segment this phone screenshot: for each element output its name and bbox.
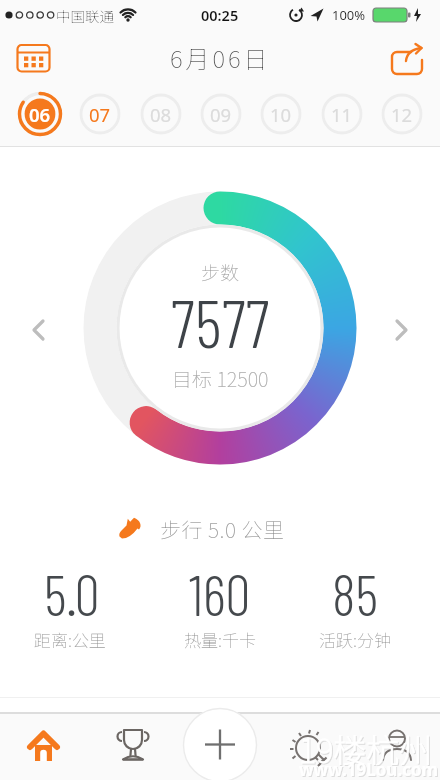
staticText: 07 bbox=[89, 102, 111, 127]
button[interactable]: 6月06日 bbox=[140, 40, 300, 72]
button[interactable]: 10 bbox=[258, 91, 304, 137]
button[interactable]: 07 bbox=[77, 91, 123, 137]
staticText: 距离:公里 bbox=[34, 627, 106, 651]
staticText: 160 bbox=[189, 560, 251, 627]
button[interactable] bbox=[290, 730, 330, 770]
staticText: 19楼杭州 bbox=[300, 726, 434, 766]
button[interactable] bbox=[28, 317, 50, 343]
staticText: www.19Lou.com bbox=[300, 759, 440, 780]
button[interactable] bbox=[389, 43, 427, 77]
button[interactable]: 85 bbox=[295, 558, 415, 628]
button[interactable] bbox=[379, 729, 415, 765]
staticText: 08 bbox=[150, 102, 172, 127]
staticText: www.19Lou.com bbox=[299, 758, 439, 780]
button[interactable]: 5.0 bbox=[12, 558, 132, 628]
button[interactable]: 08 bbox=[138, 91, 184, 137]
button[interactable]: 11 bbox=[319, 91, 365, 137]
button[interactable] bbox=[390, 317, 412, 343]
staticText: 10 bbox=[270, 102, 292, 127]
button[interactable] bbox=[16, 43, 51, 73]
staticText: 12 bbox=[391, 102, 413, 127]
button[interactable]: 06 bbox=[17, 91, 63, 137]
staticText: 热量:千卡 bbox=[184, 627, 256, 651]
staticText: 09 bbox=[210, 102, 232, 127]
staticText: 7577 bbox=[171, 282, 270, 361]
staticText: 活跃:分钟 bbox=[319, 627, 391, 651]
staticText: 11 bbox=[331, 102, 353, 127]
button[interactable]: 160 bbox=[160, 558, 280, 628]
button[interactable]: 12 bbox=[379, 91, 425, 137]
staticText: 步行 5.0 公里 bbox=[160, 514, 285, 544]
staticText: 5.0 bbox=[44, 560, 100, 627]
staticText: 00:25 bbox=[201, 5, 239, 25]
staticText: 19楼杭州 bbox=[299, 725, 433, 765]
button[interactable] bbox=[114, 727, 152, 765]
staticText: 06 bbox=[29, 102, 51, 127]
staticText: 步数 bbox=[201, 258, 240, 282]
staticText: 100% bbox=[332, 6, 366, 24]
staticText: 目标 12500 bbox=[172, 364, 269, 390]
staticText: 85 bbox=[332, 560, 378, 627]
staticText: 中国联通 bbox=[56, 5, 114, 26]
button[interactable] bbox=[182, 707, 258, 780]
button[interactable] bbox=[27, 729, 61, 763]
button[interactable]: 09 bbox=[198, 91, 244, 137]
staticText: 6月06日 bbox=[170, 40, 271, 72]
